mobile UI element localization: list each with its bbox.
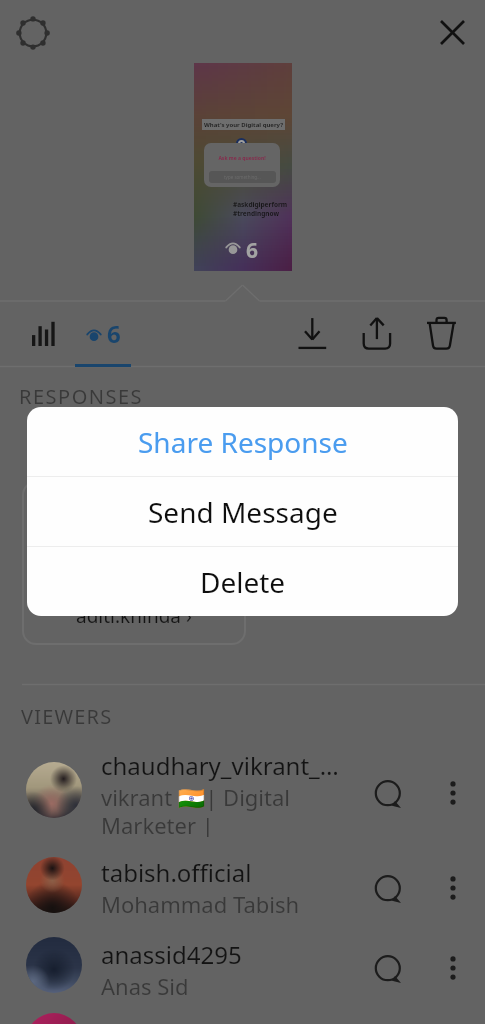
button[interactable]: chaudhary_vikrant_… [0,762,485,850]
button[interactable]: More options [437,777,469,809]
button[interactable]: aditi.khinda › [22,481,246,645]
button[interactable]: anassid4295 [0,937,485,1013]
button[interactable]: Share Response [27,407,458,476]
button[interactable]: Delete [27,547,458,616]
button[interactable]: Settings [7,7,57,57]
staticText: vikrant 🇮🇳| Digital Marketer | [101,782,290,837]
staticText: #askdigiperform [233,200,288,209]
staticText: Ask me a question! [204,155,280,162]
staticText: aditi.khinda › [76,603,192,629]
button[interactable]: Close [428,8,476,56]
staticText: RESPONSES [19,383,144,410]
button[interactable]: Share [352,308,400,356]
button[interactable]: tabish.official [0,857,485,933]
button[interactable]: Message [369,950,409,990]
staticText: VIEWERS [21,703,113,730]
button[interactable]: Download [288,308,336,356]
button[interactable]: Message [369,775,409,815]
button[interactable]: More options [437,872,469,904]
staticText: Delete [200,563,286,601]
button[interactable]: Insights [21,310,65,360]
staticText: 6 [246,236,259,265]
staticText: anassid4295 [101,938,242,971]
staticText: #trendingnow [233,209,280,218]
staticText: 6 [107,317,121,350]
button[interactable]: Send Message [27,477,458,546]
staticText: chaudhary_vikrant_… [101,749,339,782]
button[interactable]: 6 [80,310,128,360]
staticText: type something... [224,174,261,180]
staticText: Anas Sid [101,971,189,1001]
staticText: Share Response [138,423,348,461]
staticText: Mohammad Tabish [101,889,300,919]
button[interactable]: Message [369,870,409,910]
button[interactable]: More options [437,952,469,984]
button[interactable]: Delete [416,308,464,356]
staticText: What's your Digital query? [204,121,284,129]
button[interactable]: What's your Digital query? [194,64,292,267]
staticText: tabish.official [101,856,252,889]
staticText: Send Message [148,493,338,531]
